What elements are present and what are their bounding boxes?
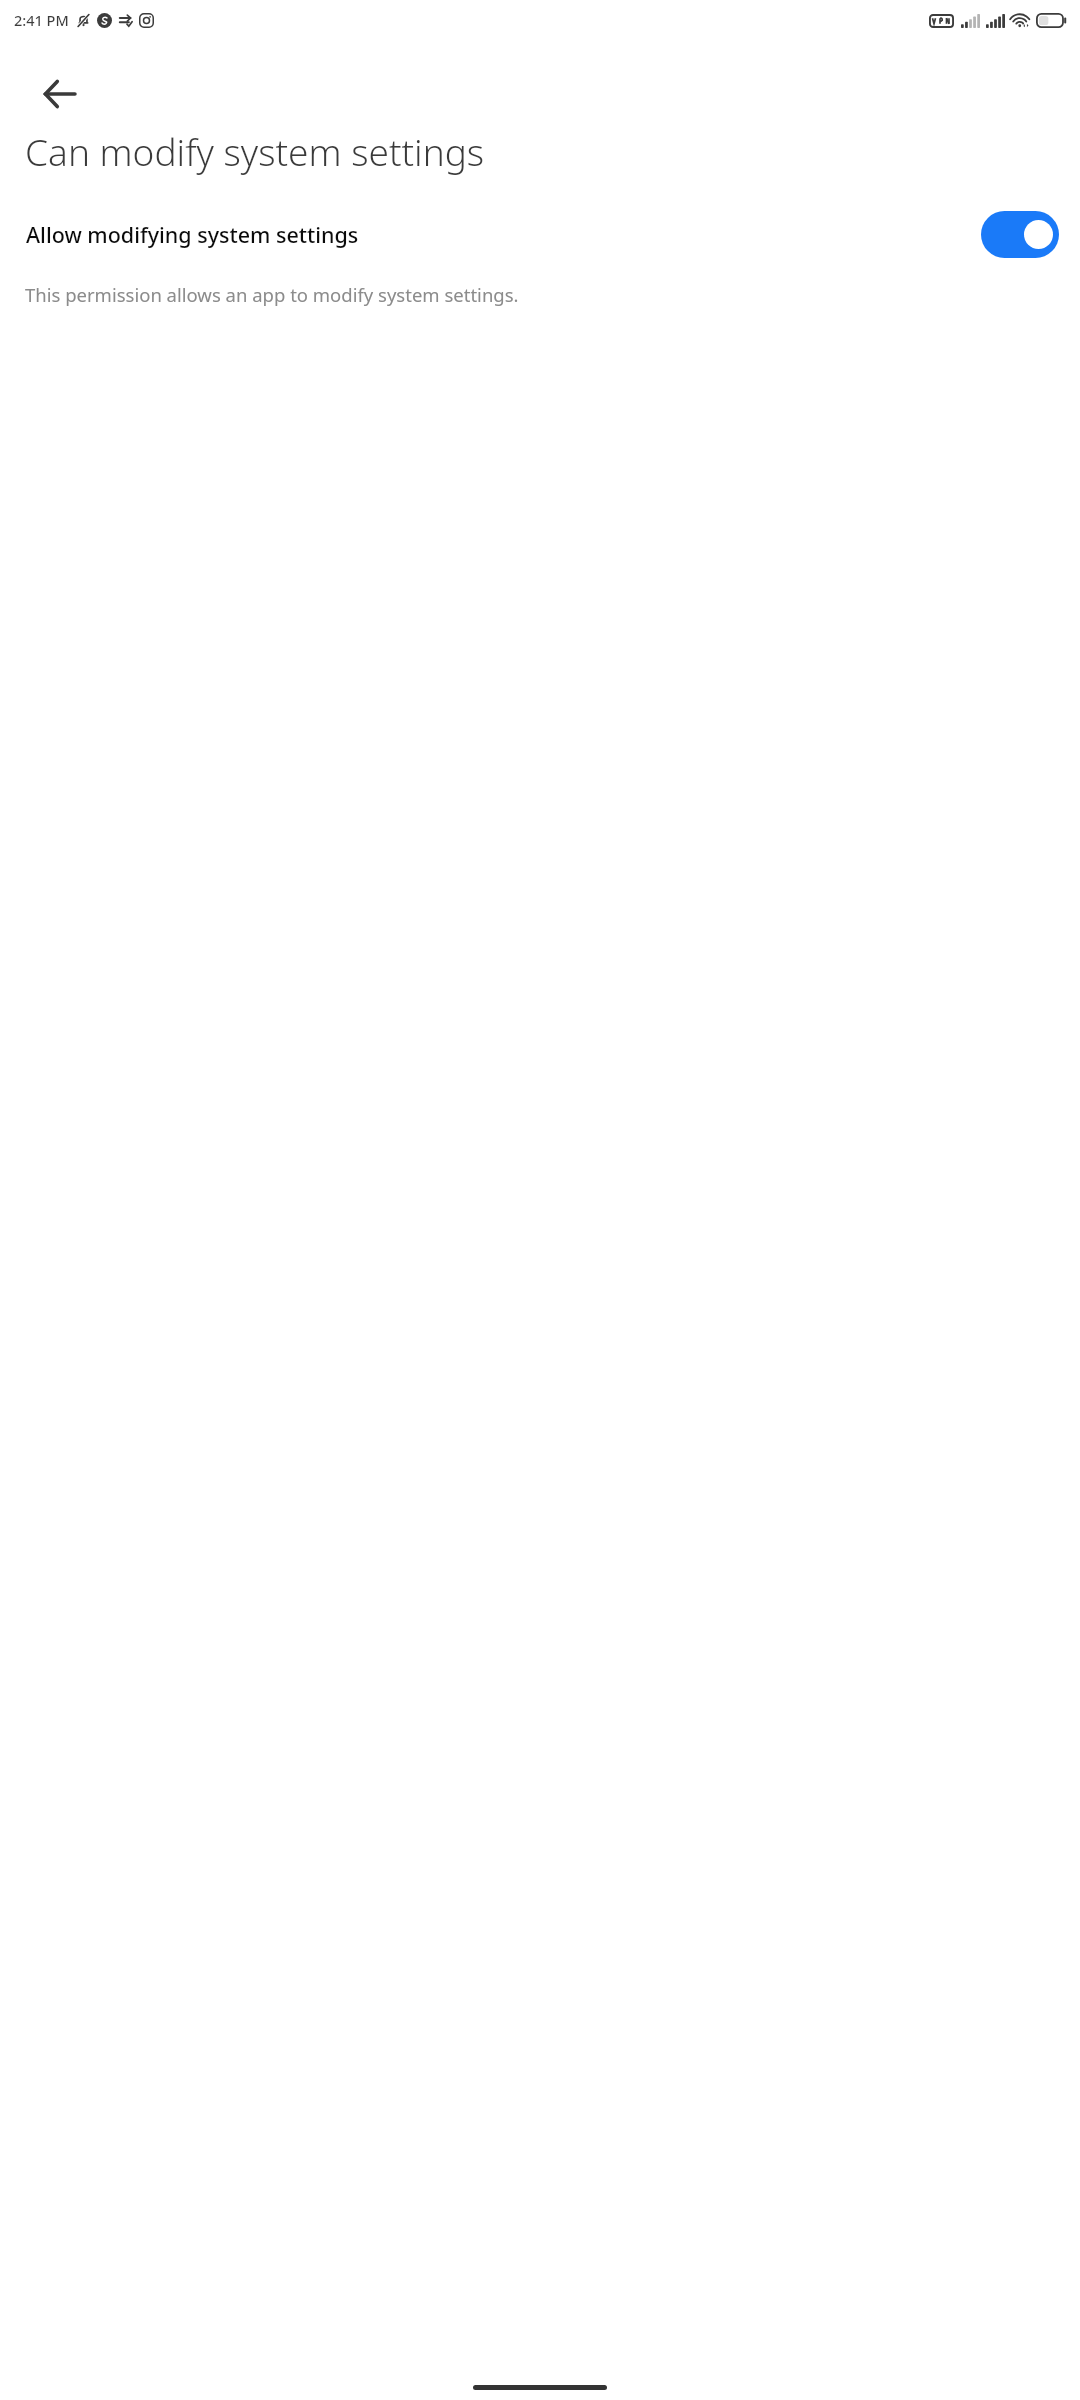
staticText: 2:41 PM <box>14 10 69 30</box>
button[interactable]: Back <box>24 58 96 130</box>
staticText: Allow modifying system settings <box>26 220 969 249</box>
staticText: Can modify system settings <box>25 126 1020 176</box>
button[interactable]: Allow modifying system settings <box>0 202 1080 266</box>
staticText: This permission allows an app to modify … <box>25 282 1056 307</box>
button[interactable]: Allow modifying system settings toggle <box>981 211 1059 258</box>
